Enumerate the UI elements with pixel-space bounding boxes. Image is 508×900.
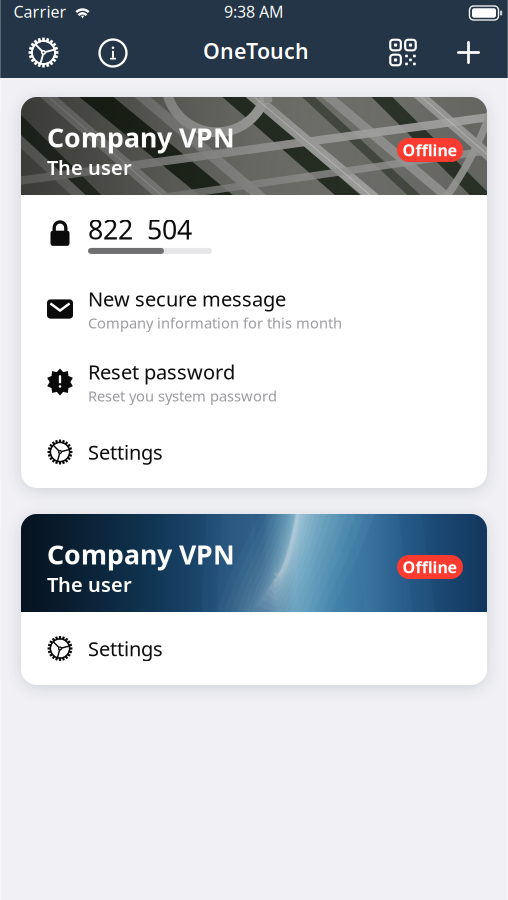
staticText: Company VPN — [47, 119, 235, 155]
button[interactable]: Offline — [397, 138, 463, 162]
staticText: Company information for this month — [88, 313, 342, 333]
staticText: OneTouch — [203, 36, 309, 65]
button[interactable]: Offline — [397, 555, 463, 579]
button[interactable]: Reset password — [21, 358, 487, 405]
staticText: New secure message — [88, 285, 286, 312]
staticText: 9:38 AM — [224, 1, 284, 22]
staticText: 822 504 — [88, 211, 192, 247]
staticText: Company VPN — [47, 536, 235, 572]
button[interactable]: 822 504 — [21, 211, 487, 254]
button[interactable]: Information — [91, 31, 135, 75]
button[interactable]: New secure message — [21, 285, 487, 332]
staticText: The user — [47, 154, 132, 180]
button[interactable]: Settings — [21, 437, 487, 467]
staticText: Settings — [88, 635, 163, 662]
staticText: The user — [47, 571, 132, 597]
staticText: Offline — [402, 139, 457, 161]
button[interactable]: Settings — [21, 633, 487, 663]
staticText: Reset password — [88, 358, 235, 385]
staticText: Carrier — [13, 1, 66, 22]
staticText: Offline — [402, 556, 457, 578]
button[interactable]: Settings — [21, 30, 65, 74]
staticText: Settings — [88, 439, 163, 465]
staticText: Reset you system password — [88, 386, 277, 406]
button[interactable]: Add — [446, 30, 490, 74]
button[interactable]: Scan QR code — [381, 30, 425, 74]
